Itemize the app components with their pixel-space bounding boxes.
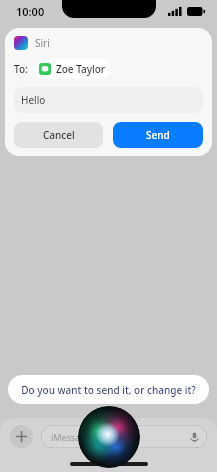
staticText: Siri <box>35 36 50 50</box>
button[interactable]: Zoe Taylor <box>34 59 111 79</box>
button[interactable]: Send <box>113 122 203 148</box>
staticText: Do you want to send it, or change it? <box>21 383 196 397</box>
button[interactable]: Do you want to send it, or change it? <box>8 375 209 404</box>
staticText: Cancel <box>43 128 75 142</box>
staticText: Hello <box>21 93 46 107</box>
staticText: To: <box>14 62 28 76</box>
button[interactable]: Cancel <box>14 122 103 148</box>
button[interactable]: iMessage <box>41 425 207 448</box>
button[interactable]: Siri <box>78 406 140 468</box>
staticText: Zoe Taylor <box>56 62 106 76</box>
button[interactable]: Dictate <box>187 430 201 444</box>
staticText: 10:00 <box>16 4 45 19</box>
staticText: iMessage <box>51 431 91 443</box>
staticText: Send <box>146 128 170 142</box>
button[interactable]: Hello <box>14 87 203 113</box>
button[interactable]: Add attachment <box>10 425 33 448</box>
